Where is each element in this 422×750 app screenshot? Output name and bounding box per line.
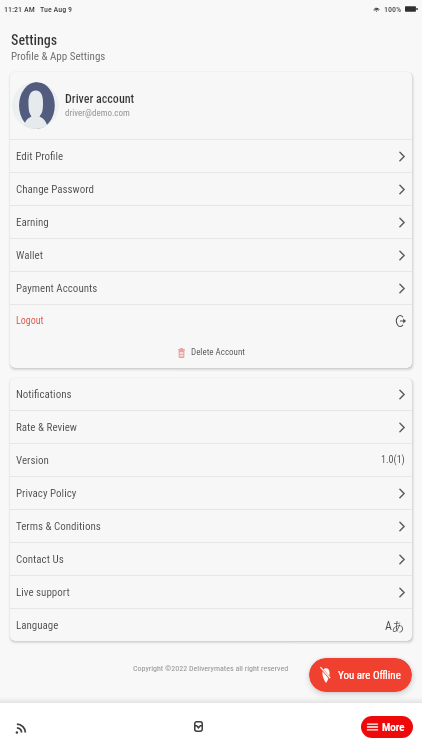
staticText: Aあ <box>385 618 405 633</box>
button[interactable]: Driver account <box>10 72 412 139</box>
button[interactable]: Activity feed <box>0 703 41 750</box>
staticText: Payment Accounts <box>16 282 98 295</box>
staticText: driver@demo.com <box>65 108 130 119</box>
button[interactable]: Version <box>10 444 412 476</box>
staticText: Logout <box>16 315 44 327</box>
button[interactable]: Rate & Review <box>10 411 412 443</box>
staticText: You are Offline <box>338 669 401 682</box>
staticText: Earning <box>16 216 49 229</box>
staticText: Driver account <box>65 92 135 106</box>
staticText: Version <box>16 454 49 467</box>
staticText: Edit Profile <box>16 150 64 163</box>
staticText: Notifications <box>16 388 72 401</box>
staticText: 100% <box>384 5 402 14</box>
staticText: Rate & Review <box>16 421 78 434</box>
button[interactable]: Change Password <box>10 173 412 205</box>
staticText: 11:21 AM <box>4 5 35 14</box>
staticText: Privacy Policy <box>16 487 77 500</box>
button[interactable]: Orders <box>178 703 218 750</box>
staticText: Live support <box>16 586 70 599</box>
button[interactable]: Notifications <box>10 378 412 410</box>
staticText: More <box>382 721 405 734</box>
staticText: Contact Us <box>16 553 64 566</box>
button[interactable]: Payment Accounts <box>10 272 412 304</box>
staticText: 1.0(1) <box>381 454 405 466</box>
staticText: Language <box>16 619 59 632</box>
button[interactable]: Earning <box>10 206 412 238</box>
button[interactable]: Wallet <box>10 239 412 271</box>
button[interactable]: Delete Account <box>175 344 248 361</box>
button[interactable]: Terms & Conditions <box>10 510 412 542</box>
button[interactable]: More <box>361 716 413 738</box>
button[interactable]: Language <box>10 609 412 641</box>
button[interactable]: Logout <box>10 305 412 337</box>
staticText: Copyright ©2022 Deliverymates all right … <box>133 664 289 673</box>
staticText: Terms & Conditions <box>16 520 101 533</box>
staticText: Tue Aug 9 <box>40 5 72 14</box>
staticText: Wallet <box>16 249 43 262</box>
staticText: Delete Account <box>191 347 245 358</box>
button[interactable]: Privacy Policy <box>10 477 412 509</box>
button[interactable]: Live support <box>10 576 412 608</box>
staticText: Profile & App Settings <box>11 50 106 63</box>
button[interactable]: Contact Us <box>10 543 412 575</box>
button[interactable]: You are Offline <box>309 658 412 692</box>
staticText: Settings <box>11 32 58 48</box>
button[interactable]: Edit Profile <box>10 140 412 172</box>
staticText: Change Password <box>16 183 94 196</box>
